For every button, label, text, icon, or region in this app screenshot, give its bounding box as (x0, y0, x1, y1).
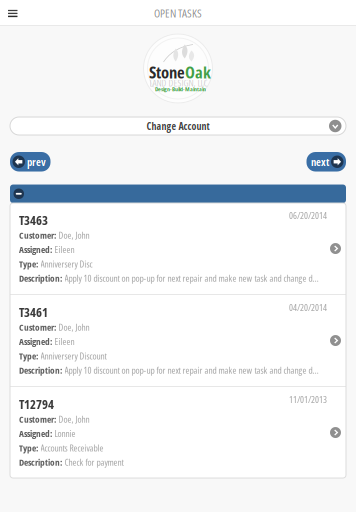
staticText: Design·Build·Maintain (155, 85, 206, 93)
button[interactable]: T3461 (10, 295, 346, 386)
staticText: Doe, John (58, 229, 89, 241)
staticText: LAND DESIGN, LLC (149, 77, 207, 89)
staticText: Assigned: (19, 335, 52, 348)
staticText: Type: (19, 349, 38, 362)
staticText: Doe, John (58, 321, 89, 333)
staticText: Eileen (54, 243, 74, 256)
staticText: Description: (19, 272, 62, 285)
button[interactable]: next (306, 152, 346, 171)
staticText: Change Account (146, 119, 209, 133)
staticText: OPEN TASKS (154, 5, 202, 21)
staticText: Assigned: (19, 427, 52, 440)
staticText: 06/20/2014 (289, 209, 327, 222)
staticText: Description: (19, 364, 62, 377)
staticText: Lonnie (54, 427, 75, 440)
staticText: Apply 10 discount on pop-up for next rep… (64, 272, 319, 285)
button[interactable]: Change Account (0, 107, 356, 135)
staticText: Oak (185, 61, 211, 83)
button[interactable]: T3463 (10, 203, 346, 294)
staticText: Customer: (19, 413, 56, 425)
staticText: Customer: (19, 321, 56, 333)
staticText: prev (27, 154, 46, 169)
staticText: T3463 (19, 211, 48, 229)
staticText: Type: (19, 441, 38, 454)
staticText: Accounts Receivable (40, 441, 103, 454)
staticText: Stone (149, 61, 185, 83)
button[interactable]: T12794 (10, 387, 346, 478)
staticText: Check for payment (64, 456, 123, 469)
staticText: T12794 (19, 395, 54, 413)
staticText: Anniversery Discount (40, 349, 106, 362)
staticText: Eileen (54, 335, 74, 348)
staticText: Doe, John (58, 413, 89, 425)
staticText: T3461 (19, 303, 48, 321)
staticText: Description: (19, 456, 62, 469)
button[interactable]: Collapse section (10, 184, 24, 203)
button[interactable]: Menu (0, 0, 26, 26)
staticText: 04/20/2014 (289, 301, 327, 314)
staticText: 11/01/2013 (289, 393, 327, 406)
staticText: next (311, 154, 329, 169)
staticText: Assigned: (19, 243, 52, 256)
staticText: Apply 10 discount on pop-up for next rep… (64, 364, 319, 377)
staticText: Customer: (19, 229, 56, 241)
button[interactable]: prev (10, 152, 50, 171)
staticText: Type: (19, 257, 38, 270)
staticText: Anniversery Disc (40, 257, 92, 270)
